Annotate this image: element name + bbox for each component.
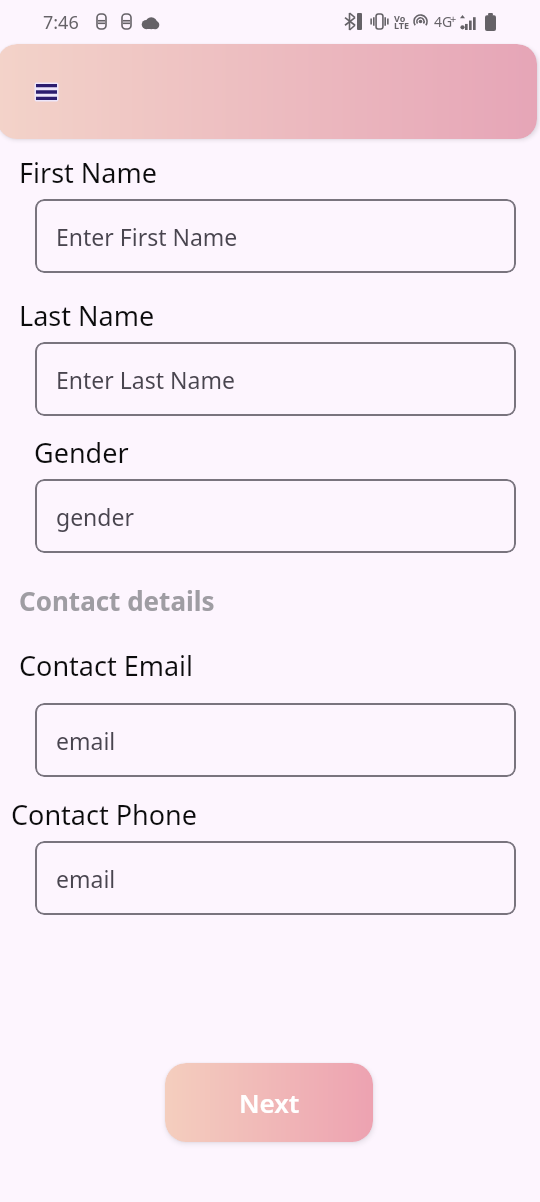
staticText: Vo	[394, 12, 406, 24]
button[interactable]: email	[35, 841, 516, 915]
staticText: First Name	[19, 154, 157, 191]
button[interactable]: Enter First Name	[35, 199, 516, 273]
staticText: Contact Email	[19, 647, 194, 684]
staticText: LTE	[394, 19, 410, 31]
staticText: +	[450, 11, 457, 26]
button[interactable]: gender	[35, 479, 516, 553]
staticText: email	[56, 863, 116, 894]
staticText: Last Name	[19, 297, 155, 334]
staticText: 7:46	[43, 10, 79, 35]
staticText: Contact Phone	[11, 796, 197, 833]
staticText: Contact details	[19, 583, 215, 618]
staticText: Next	[239, 1085, 300, 1120]
staticText: Enter First Name	[56, 221, 238, 252]
staticText: gender	[56, 501, 134, 532]
staticText: Gender	[34, 434, 129, 471]
button[interactable]: Enter Last Name	[35, 342, 516, 416]
staticText: Enter Last Name	[56, 364, 235, 395]
button[interactable]: Next	[165, 1063, 373, 1142]
button[interactable]: email	[35, 703, 516, 777]
button[interactable]: Open navigation menu	[17, 63, 75, 121]
staticText: email	[56, 725, 116, 756]
staticText: 4G	[434, 12, 453, 31]
